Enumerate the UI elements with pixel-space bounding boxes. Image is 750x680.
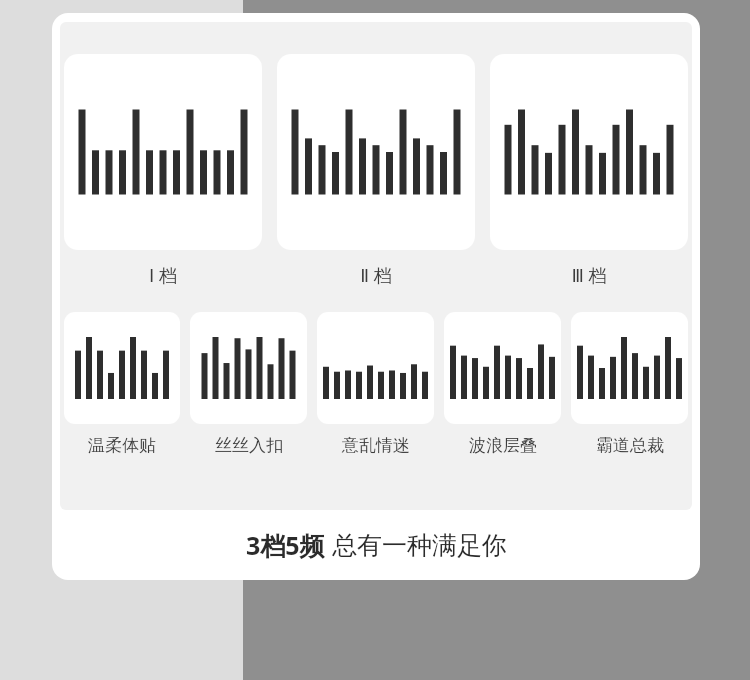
- staticText: Ⅰ 档: [149, 263, 177, 288]
- button[interactable]: 霸道总裁: [571, 312, 688, 456]
- staticText: 意乱情迷: [342, 435, 410, 456]
- button[interactable]: 温柔体贴: [64, 312, 180, 456]
- staticText: 波浪层叠: [469, 435, 537, 456]
- button[interactable]: Ⅲ 档: [490, 54, 688, 288]
- staticText: 温柔体贴: [88, 435, 156, 456]
- staticText: 3档5频: [246, 528, 325, 562]
- staticText: Ⅲ 档: [571, 263, 607, 288]
- button[interactable]: 丝丝入扣: [190, 312, 307, 456]
- staticText: 霸道总裁: [596, 435, 664, 456]
- staticText: 丝丝入扣: [215, 435, 283, 456]
- button[interactable]: Ⅱ 档: [277, 54, 475, 288]
- staticText: Ⅱ 档: [360, 263, 392, 288]
- staticText: 总有一种满足你: [332, 530, 507, 561]
- button[interactable]: 波浪层叠: [444, 312, 561, 456]
- button[interactable]: 意乱情迷: [317, 312, 434, 456]
- button[interactable]: Ⅰ 档: [64, 54, 262, 288]
